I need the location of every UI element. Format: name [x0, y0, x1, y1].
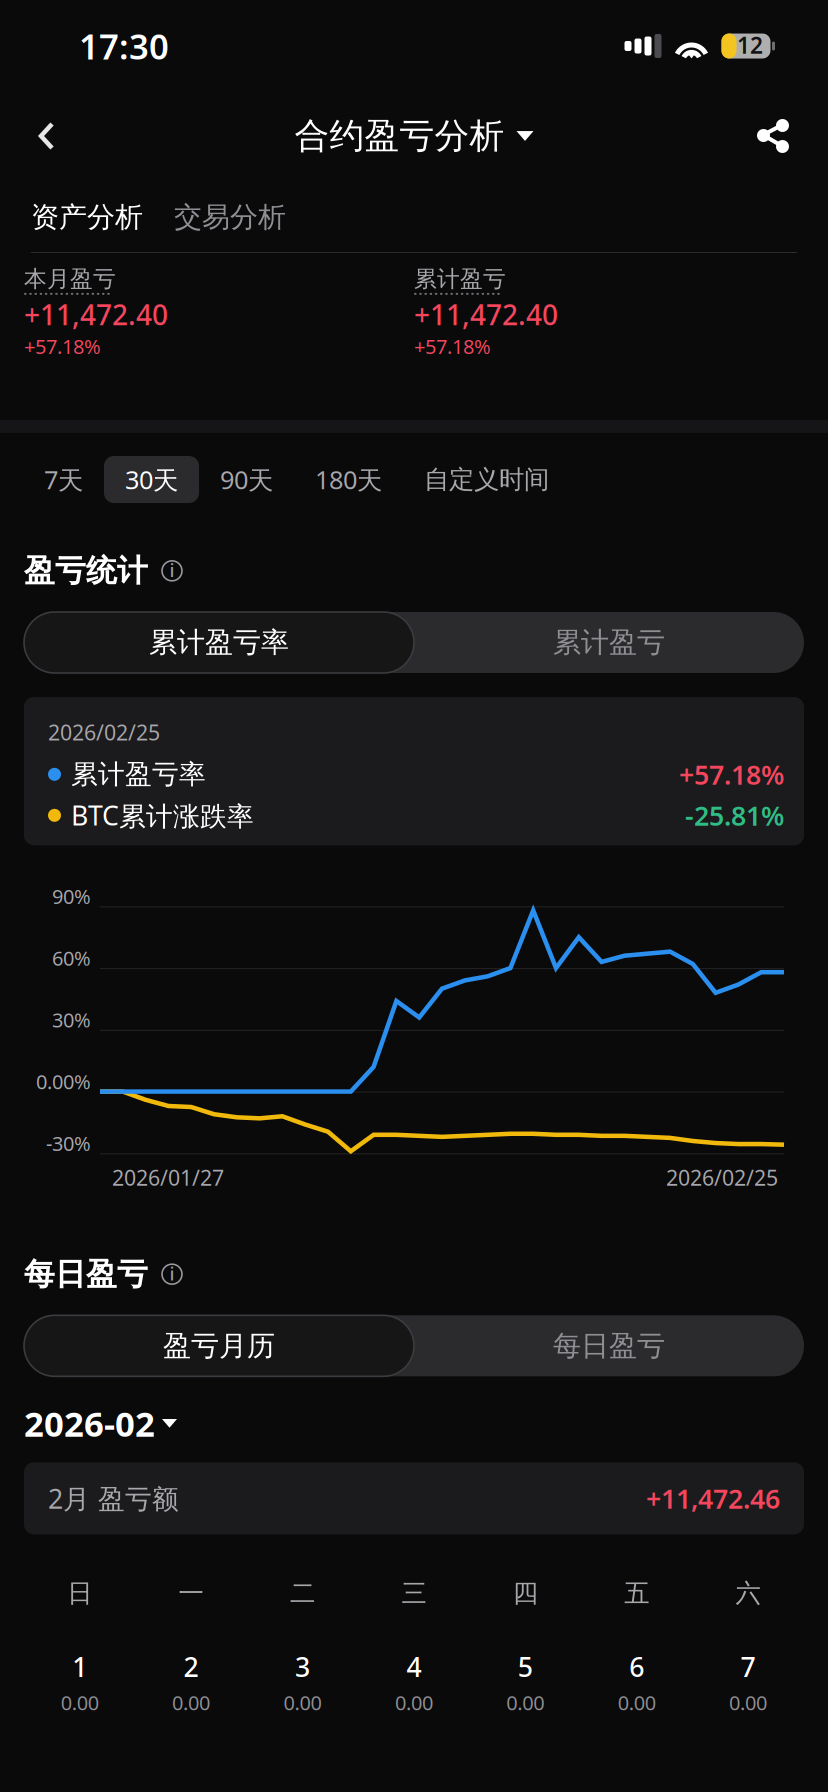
- staticText: 资产分析: [31, 200, 143, 234]
- staticText: 2月 盈亏额: [48, 1481, 179, 1516]
- button[interactable]: 资产分析: [31, 200, 174, 234]
- button[interactable]: 180天: [294, 456, 403, 503]
- button[interactable]: 7天: [23, 456, 104, 503]
- staticText: +57.18%: [414, 333, 491, 360]
- button[interactable]: 累计盈亏: [414, 612, 804, 673]
- staticText: 六: [736, 1578, 761, 1609]
- staticText: 自定义时间: [424, 464, 549, 495]
- button[interactable]: 分享: [735, 105, 791, 167]
- staticText: 盈亏月历: [163, 1329, 275, 1363]
- staticText: 17:30: [79, 23, 169, 69]
- staticText: 累计盈亏率: [71, 758, 206, 791]
- staticText: i: [169, 1261, 174, 1286]
- staticText: 0.00: [283, 1689, 321, 1716]
- staticText: 累计盈亏: [553, 625, 665, 660]
- staticText: 60%: [52, 945, 91, 971]
- staticText: 四: [513, 1578, 538, 1609]
- staticText: +57.18%: [679, 757, 784, 792]
- staticText: 2026/02/25: [48, 718, 160, 746]
- button[interactable]: 盈亏月历: [24, 1315, 414, 1376]
- staticText: 180天: [315, 463, 382, 496]
- staticText: 6: [629, 1649, 644, 1684]
- staticText: 7: [741, 1649, 756, 1684]
- staticText: 30%: [52, 1007, 91, 1033]
- staticText: 每日盈亏: [24, 1255, 148, 1293]
- staticText: 盈亏统计: [24, 552, 148, 590]
- staticText: +11,472.40: [414, 296, 558, 333]
- staticText: 5: [518, 1649, 533, 1684]
- staticText: 累计盈亏率: [149, 625, 289, 660]
- button[interactable]: 返回: [37, 105, 93, 167]
- staticText: 本月盈亏: [24, 265, 116, 293]
- staticText: 7天: [44, 463, 83, 496]
- staticText: 每日盈亏: [553, 1329, 665, 1363]
- staticText: BTC累计涨跌率: [71, 798, 254, 833]
- staticText: 日: [67, 1578, 92, 1609]
- staticText: 三: [401, 1578, 426, 1609]
- staticText: 2026-02: [24, 1400, 155, 1446]
- button[interactable]: 90天: [199, 456, 294, 503]
- staticText: +11,472.40: [24, 296, 168, 333]
- staticText: 五: [624, 1578, 649, 1609]
- staticText: 0.00: [61, 1689, 99, 1716]
- button[interactable]: 每日盈亏: [414, 1315, 804, 1376]
- staticText: 2: [184, 1649, 199, 1684]
- staticText: 90天: [220, 463, 273, 496]
- button[interactable]: 30天: [104, 456, 199, 503]
- staticText: 30天: [125, 463, 178, 496]
- staticText: 0.00: [729, 1689, 767, 1716]
- button[interactable]: 自定义时间: [403, 456, 570, 503]
- staticText: 4: [406, 1649, 421, 1684]
- staticText: +57.18%: [24, 333, 101, 360]
- staticText: 90%: [52, 883, 91, 910]
- staticText: 2026/01/27: [112, 1163, 224, 1192]
- staticText: 0.00: [618, 1689, 656, 1716]
- staticText: 交易分析: [174, 200, 286, 234]
- staticText: +11,472.46: [646, 1481, 780, 1516]
- staticText: 2026/02/25: [666, 1163, 778, 1192]
- staticText: 0.00: [172, 1689, 210, 1716]
- staticText: 12: [737, 30, 763, 60]
- staticText: i: [169, 557, 174, 582]
- button[interactable]: 合约盈亏分析: [294, 101, 533, 171]
- staticText: 合约盈亏分析: [294, 115, 504, 157]
- button[interactable]: 交易分析: [174, 200, 286, 234]
- staticText: 0.00: [395, 1689, 433, 1716]
- staticText: 0.00: [506, 1689, 544, 1716]
- button[interactable]: 累计盈亏率: [24, 612, 414, 673]
- staticText: -25.81%: [685, 798, 784, 833]
- staticText: 二: [290, 1578, 315, 1609]
- staticText: 3: [295, 1649, 310, 1684]
- staticText: 一: [179, 1578, 204, 1609]
- button[interactable]: 2026-02: [24, 1400, 177, 1446]
- staticText: 1: [72, 1649, 87, 1684]
- staticText: -30%: [46, 1130, 91, 1157]
- staticText: 0.00%: [36, 1068, 91, 1095]
- staticText: 累计盈亏: [414, 265, 506, 293]
